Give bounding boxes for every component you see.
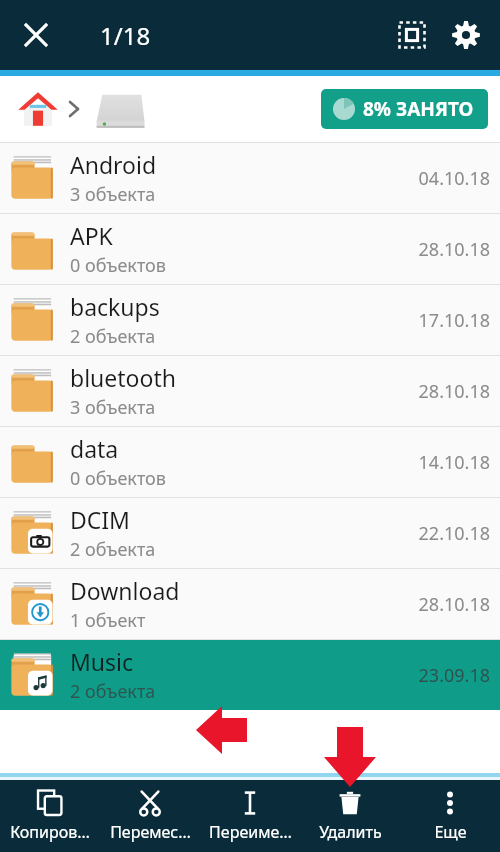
- staticText: 0 объектов: [70, 466, 166, 491]
- button[interactable]: bluetooth: [0, 356, 500, 426]
- staticText: 1 объект: [70, 608, 146, 633]
- staticText: 28.10.18: [418, 379, 490, 404]
- button[interactable]: Еще: [400, 780, 500, 852]
- staticText: Download: [70, 575, 180, 606]
- staticText: 28.10.18: [418, 237, 490, 262]
- staticText: 3 объекта: [70, 395, 156, 420]
- button[interactable]: Download: [0, 569, 500, 639]
- staticText: Music: [70, 646, 134, 677]
- staticText: 1/18: [100, 19, 151, 52]
- staticText: 8% ЗАНЯТО: [363, 96, 474, 122]
- staticText: APK: [70, 220, 113, 251]
- staticText: 3 объекта: [70, 182, 156, 207]
- button[interactable]: Select all: [386, 9, 438, 61]
- staticText: Переиме…: [209, 821, 292, 843]
- staticText: Android: [70, 149, 157, 180]
- button[interactable]: Перемес…: [100, 780, 200, 852]
- staticText: Удалить: [319, 821, 382, 843]
- staticText: 0 объектов: [70, 253, 166, 278]
- staticText: backups: [70, 291, 160, 322]
- staticText: 2 объекта: [70, 679, 156, 704]
- button[interactable]: Close: [12, 11, 60, 59]
- staticText: Перемес…: [110, 821, 191, 843]
- button[interactable]: Android: [0, 143, 500, 213]
- button[interactable]: APK: [0, 214, 500, 284]
- button[interactable]: Music: [0, 640, 500, 710]
- button[interactable]: data: [0, 427, 500, 497]
- staticText: 17.10.18: [418, 308, 490, 333]
- button[interactable]: Home: [14, 85, 62, 133]
- button[interactable]: Internal storage: [90, 85, 148, 133]
- staticText: data: [70, 433, 119, 464]
- staticText: 22.10.18: [418, 521, 490, 546]
- staticText: Копиров…: [10, 821, 90, 843]
- staticText: 14.10.18: [418, 450, 490, 475]
- staticText: DCIM: [70, 504, 130, 535]
- staticText: Еще: [434, 821, 467, 843]
- button[interactable]: Settings: [438, 7, 494, 63]
- button[interactable]: Удалить: [300, 780, 400, 852]
- staticText: 28.10.18: [418, 592, 490, 617]
- button[interactable]: Копиров…: [0, 780, 100, 852]
- staticText: 04.10.18: [418, 166, 490, 191]
- button[interactable]: DCIM: [0, 498, 500, 568]
- staticText: 2 объекта: [70, 537, 156, 562]
- button[interactable]: backups: [0, 285, 500, 355]
- button[interactable]: 8% ЗАНЯТО: [321, 89, 488, 129]
- staticText: 2 объекта: [70, 324, 156, 349]
- button[interactable]: Переиме…: [200, 780, 300, 852]
- staticText: bluetooth: [70, 362, 176, 393]
- staticText: 23.09.18: [418, 663, 490, 688]
